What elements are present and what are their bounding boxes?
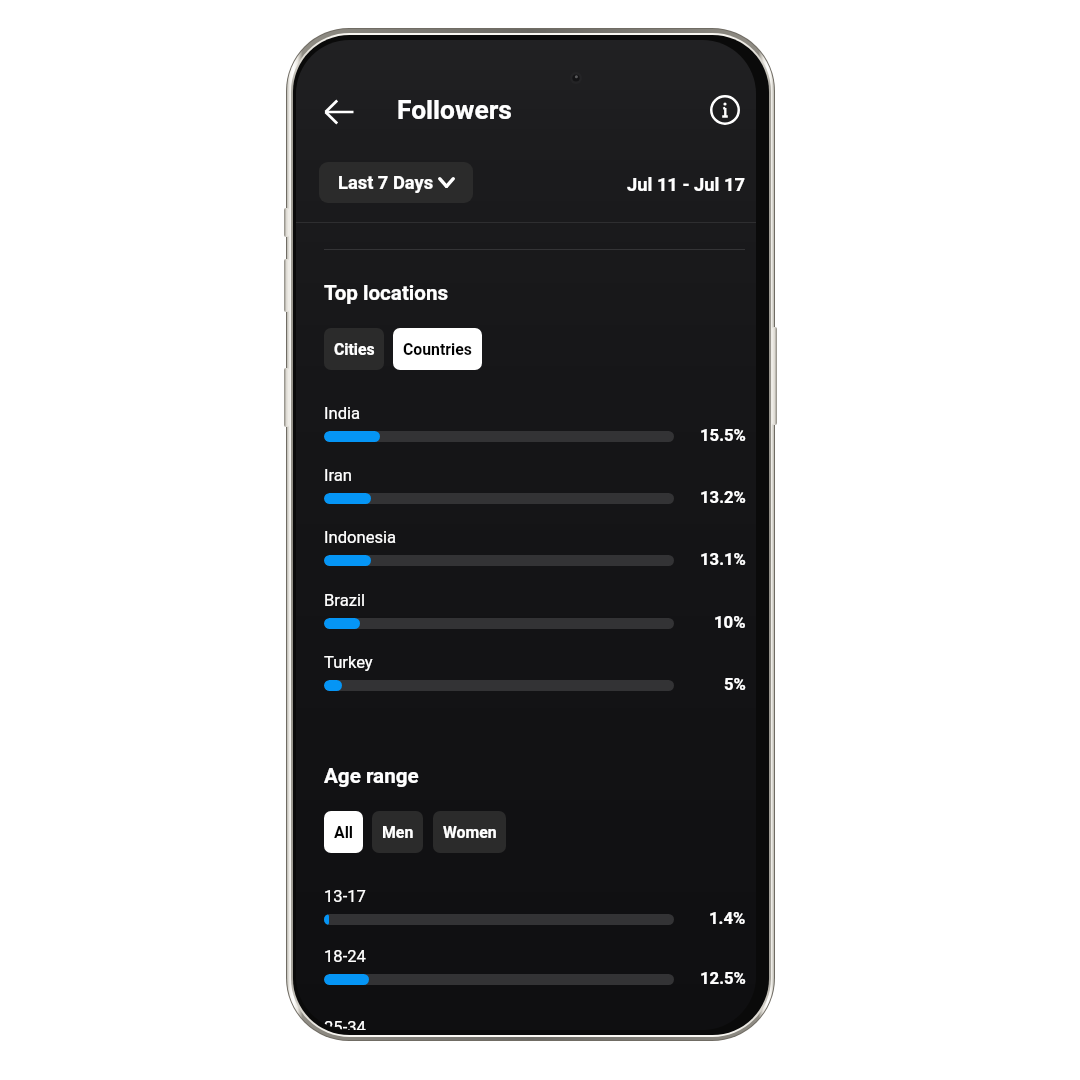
button[interactable]: Women <box>433 811 506 853</box>
staticText: India <box>324 404 361 423</box>
staticText: 5% <box>724 675 746 695</box>
button[interactable]: Countries <box>393 328 482 370</box>
staticText: Iran <box>324 466 353 485</box>
staticText: 13-17 <box>324 887 366 906</box>
staticText: Turkey <box>324 653 373 672</box>
staticText: Indonesia <box>324 528 397 547</box>
staticText: Age range <box>324 764 419 788</box>
button[interactable]: Men <box>372 811 423 853</box>
staticText: Last 7 Days <box>338 172 434 193</box>
staticText: 13.1% <box>700 550 746 570</box>
staticText: Women <box>443 823 497 842</box>
button[interactable]: Information <box>701 86 749 134</box>
button[interactable]: Back <box>315 88 363 136</box>
staticText: All <box>334 823 354 842</box>
staticText: Men <box>382 823 414 842</box>
button[interactable]: All <box>324 811 363 853</box>
button[interactable]: Last 7 Days <box>319 162 473 203</box>
staticText: 15.5% <box>700 426 746 446</box>
staticText: 13.2% <box>700 488 746 508</box>
staticText: Followers <box>397 95 512 126</box>
staticText: 1.4% <box>709 909 746 929</box>
staticText: 10% <box>714 613 746 633</box>
staticText: 18-24 <box>324 947 366 966</box>
staticText: Top locations <box>324 281 449 305</box>
staticText: Brazil <box>324 591 365 610</box>
button[interactable]: Cities <box>324 328 384 370</box>
staticText: Countries <box>403 340 472 359</box>
staticText: 12.5% <box>700 969 746 989</box>
staticText: 25-34 <box>324 1018 366 1030</box>
staticText: Cities <box>334 340 375 359</box>
staticText: Jul 11 - Jul 17 <box>627 174 745 195</box>
